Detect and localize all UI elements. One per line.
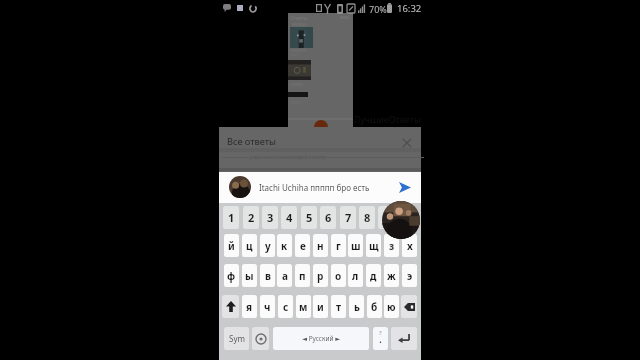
staticText: л — [352, 269, 359, 283]
staticText: ◄ Русский ► — [302, 334, 341, 343]
staticText: ф — [227, 269, 236, 283]
staticText: 4 — [286, 210, 293, 225]
staticText: т — [336, 300, 342, 314]
button[interactable]: . — [373, 327, 388, 350]
staticText: ж — [387, 269, 396, 283]
button[interactable]: й — [224, 234, 239, 257]
button[interactable]: Sym — [224, 327, 249, 350]
staticText: п — [299, 269, 306, 283]
staticText: Itachi Uchiha ппппп бро есть — [259, 182, 370, 193]
button[interactable]: ш — [348, 234, 363, 257]
staticText: о — [335, 269, 342, 283]
staticText: х — [407, 239, 413, 253]
staticText: й — [228, 239, 235, 253]
button[interactable]: д — [366, 264, 381, 287]
button[interactable]: Отправить — [393, 176, 416, 199]
staticText: г — [336, 239, 341, 253]
button[interactable]: 5 — [301, 206, 317, 229]
staticText: ы — [245, 269, 254, 283]
button[interactable] — [252, 327, 269, 350]
staticText: и — [317, 300, 324, 314]
staticText: б — [371, 300, 378, 314]
button[interactable]: ю — [384, 295, 399, 318]
button[interactable]: м — [296, 295, 311, 318]
staticText: Sym — [229, 333, 245, 344]
button[interactable] — [401, 295, 417, 318]
button[interactable]: щ — [366, 234, 381, 257]
staticText: 16:32 — [397, 2, 422, 15]
staticText: 7 — [345, 210, 352, 225]
staticText: 3 — [267, 210, 274, 225]
button[interactable]: я — [242, 295, 257, 318]
button[interactable]: 8 — [359, 206, 375, 229]
button[interactable]: ж — [384, 264, 399, 287]
button[interactable]: 2 — [243, 206, 259, 229]
staticText: у вас новый комментарий к ответу — [250, 154, 327, 160]
button[interactable]: к — [277, 234, 292, 257]
button[interactable]: о — [331, 264, 346, 287]
button[interactable]: ь — [349, 295, 364, 318]
staticText: 70% — [369, 3, 387, 15]
button[interactable]: 1 — [223, 206, 239, 229]
staticText: 1 — [228, 210, 235, 225]
staticText: р — [317, 269, 324, 283]
staticText: ч — [264, 300, 271, 314]
staticText: ЛучшиеОтветы — [354, 113, 421, 125]
staticText: 0 — [403, 210, 410, 225]
staticText: в — [265, 269, 271, 283]
staticText: 8 — [364, 210, 371, 225]
staticText: 2 — [248, 210, 255, 225]
staticText: с — [283, 300, 289, 314]
staticText: м — [299, 300, 308, 314]
button[interactable]: 6 — [320, 206, 336, 229]
button[interactable]: в — [260, 264, 275, 287]
staticText: ь — [354, 300, 360, 314]
button[interactable]: 0 — [398, 206, 414, 229]
button[interactable]: у — [260, 234, 275, 257]
button[interactable]: р — [313, 264, 328, 287]
button[interactable]: с — [278, 295, 293, 318]
button[interactable]: х — [402, 234, 417, 257]
staticText: ю — [387, 300, 396, 314]
button[interactable] — [391, 327, 417, 350]
button[interactable]: ы — [242, 264, 257, 287]
button[interactable]: з — [384, 234, 399, 257]
staticText: э — [407, 269, 413, 283]
staticText: . — [379, 331, 382, 346]
staticText: ш — [351, 239, 361, 253]
staticText: Ответы — [290, 15, 308, 22]
button[interactable]: Закрыть — [398, 134, 415, 151]
button[interactable]: и — [313, 295, 328, 318]
button[interactable]: е — [295, 234, 310, 257]
staticText: е — [300, 239, 306, 253]
staticText: к — [281, 239, 288, 253]
staticText: з — [389, 239, 395, 253]
staticText: 5 — [306, 210, 313, 225]
staticText: Все ответы — [227, 135, 276, 148]
button[interactable]: п — [295, 264, 310, 287]
button[interactable]: а — [277, 264, 292, 287]
button[interactable]: ц — [242, 234, 257, 257]
button[interactable]: 3 — [262, 206, 278, 229]
button[interactable]: 4 — [281, 206, 297, 229]
button[interactable]: 9 — [378, 206, 394, 229]
button[interactable] — [222, 295, 239, 318]
button[interactable]: н — [313, 234, 328, 257]
button[interactable]: ф — [224, 264, 239, 287]
staticText: у — [265, 239, 271, 253]
button[interactable]: э — [402, 264, 417, 287]
staticText: 9 — [383, 210, 390, 225]
button[interactable]: 7 — [340, 206, 356, 229]
staticText: ? — [379, 329, 382, 337]
staticText: щ — [369, 239, 379, 253]
button[interactable]: т — [331, 295, 346, 318]
button[interactable]: ◄ Русский ► — [273, 327, 369, 350]
button[interactable]: б — [367, 295, 382, 318]
button[interactable]: л — [348, 264, 363, 287]
staticText: д — [370, 269, 377, 283]
button[interactable]: ч — [260, 295, 275, 318]
staticText: а — [282, 269, 288, 283]
staticText: ц — [246, 239, 253, 253]
staticText: н — [317, 239, 324, 253]
button[interactable]: г — [331, 234, 346, 257]
